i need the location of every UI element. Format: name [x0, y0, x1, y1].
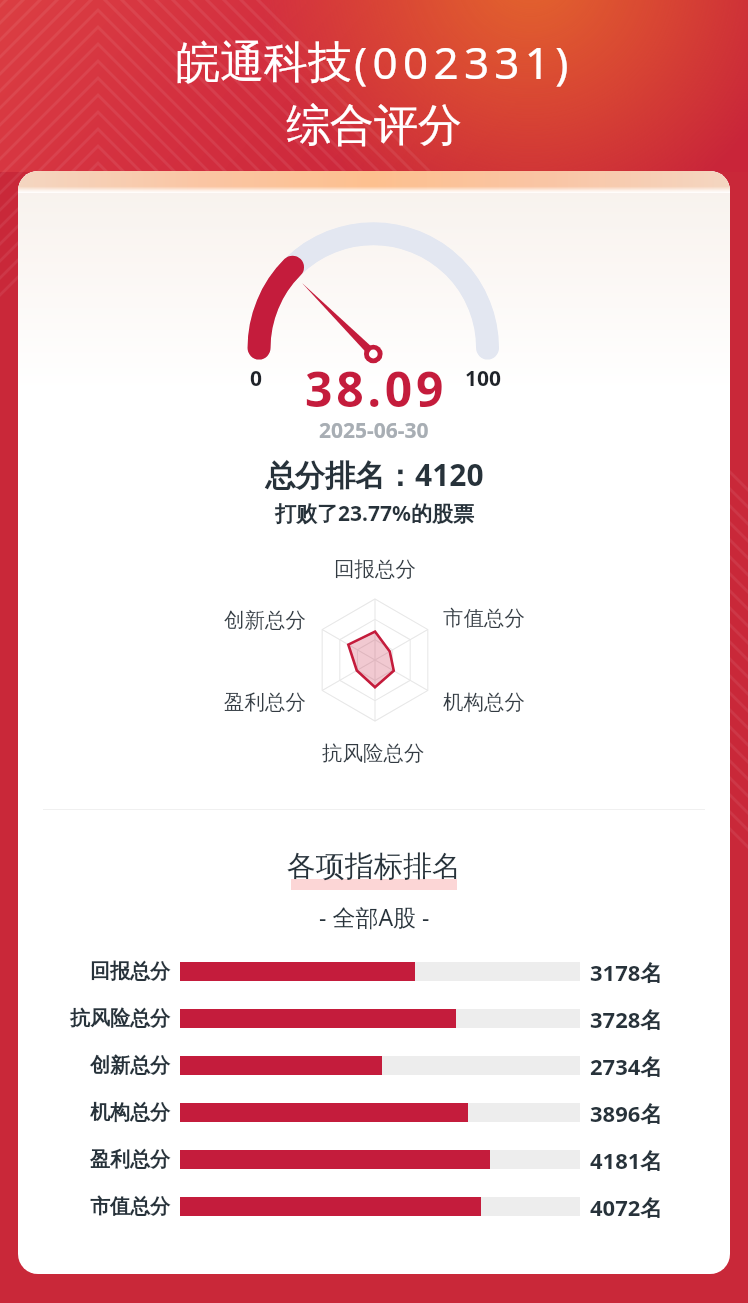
staticText: 盈利总分 — [90, 1147, 170, 1172]
staticText: 38.09 — [305, 356, 448, 421]
button[interactable]: 回报总分 — [18, 948, 730, 995]
staticText: 各项指标排名 — [287, 848, 461, 885]
staticText: 0 — [250, 364, 263, 393]
button[interactable]: 市值总分 — [18, 1183, 730, 1230]
staticText: 100 — [465, 364, 502, 393]
staticText: 打败了23.77%的股票 — [275, 499, 474, 528]
staticText: 创新总分 — [90, 1053, 170, 1078]
staticText: 总分排名：4120 — [265, 454, 484, 495]
button[interactable]: 抗风险总分 — [18, 995, 730, 1042]
button[interactable]: 盈利总分 — [18, 1136, 730, 1183]
staticText: (002331) — [354, 32, 574, 92]
staticText: 4181名 — [590, 1145, 663, 1175]
staticText: 综合评分 — [286, 98, 462, 153]
button[interactable]: 创新总分 — [18, 1042, 730, 1089]
staticText: 市值总分 — [443, 605, 525, 631]
staticText: 皖通科技 — [176, 35, 352, 90]
staticText: 盈利总分 — [224, 689, 306, 715]
staticText: 回报总分 — [90, 959, 170, 984]
staticText: 抗风险总分 — [70, 1006, 170, 1031]
staticText: - 全部A股 - — [319, 901, 430, 932]
staticText: 2025-06-30 — [319, 416, 429, 445]
staticText: 机构总分 — [90, 1100, 170, 1125]
staticText: 3178名 — [590, 957, 663, 987]
staticText: 3728名 — [590, 1004, 663, 1034]
staticText: 机构总分 — [443, 689, 525, 715]
staticText: 市值总分 — [90, 1194, 170, 1219]
staticText: 抗风险总分 — [322, 740, 425, 766]
staticText: 回报总分 — [334, 556, 416, 582]
staticText: 4072名 — [590, 1192, 663, 1222]
button[interactable]: 机构总分 — [18, 1089, 730, 1136]
staticText: 2734名 — [590, 1051, 663, 1081]
staticText: 创新总分 — [224, 607, 306, 633]
staticText: 3896名 — [590, 1098, 663, 1128]
